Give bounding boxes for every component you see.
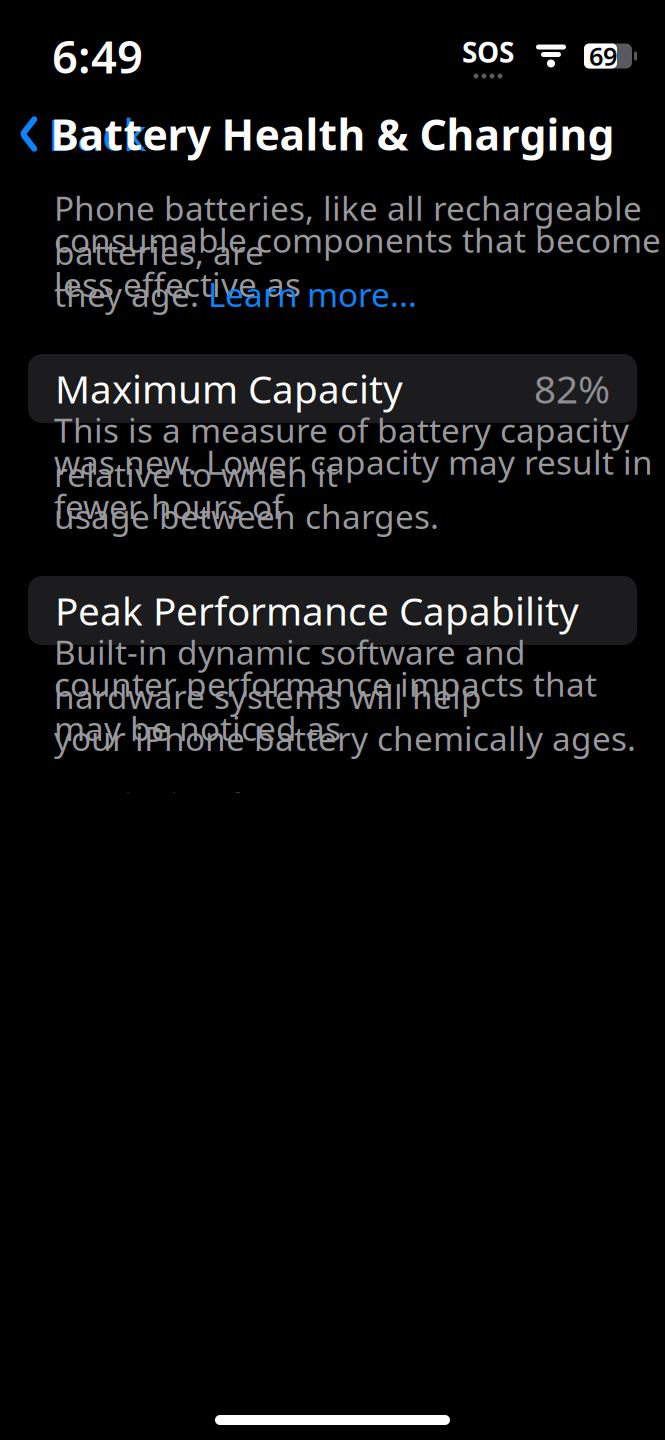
staticText: This is a measure of battery capacity re… [54, 408, 629, 496]
staticText: Back [48, 105, 146, 163]
staticText: your iPhone battery chemically ages. [54, 716, 636, 760]
staticText: was new. Lower capacity may result in fe… [54, 440, 653, 528]
staticText: consumable components that become less e… [54, 218, 661, 306]
staticText: Built-in dynamic software and hardware s… [54, 630, 526, 718]
staticText: Learn more... [208, 272, 417, 316]
staticText: 82% [534, 363, 610, 414]
staticText: Battery Health & Charging [50, 106, 614, 162]
button[interactable]: Maximum Capacity [28, 354, 637, 423]
staticText: 69 [589, 39, 617, 73]
button[interactable]: Peak Performance Capability [28, 576, 637, 645]
staticText: SOS [462, 33, 514, 71]
button[interactable]: Learn more... [208, 272, 417, 316]
staticText: 6:49 [52, 26, 143, 86]
staticText: they age. [54, 272, 208, 316]
staticText: Phone batteries, like all rechargeable b… [54, 186, 642, 274]
staticText: Maximum Capacity [55, 363, 403, 414]
button[interactable]: Back [14, 97, 150, 171]
staticText: usage between charges. [54, 494, 439, 538]
staticText: counter performance impacts that may be … [54, 662, 597, 750]
staticText: Peak Performance Capability [55, 585, 579, 636]
